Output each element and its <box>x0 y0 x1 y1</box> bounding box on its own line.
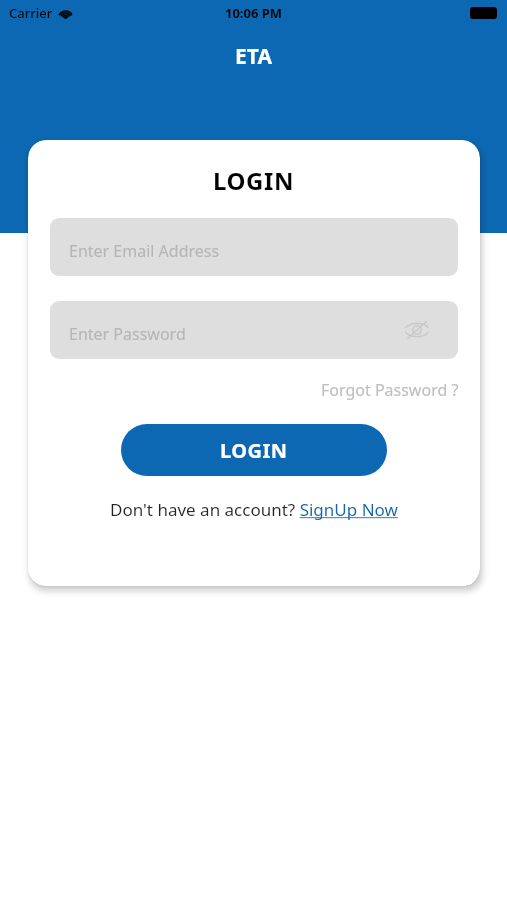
button[interactable]: Don't have an account? SignUp Now <box>110 498 398 521</box>
button[interactable]: LOGIN <box>121 424 387 476</box>
staticText: Enter Email Address <box>69 240 220 262</box>
staticText: 10:06 PM <box>225 4 283 22</box>
staticText: Forgot Password ? <box>321 379 459 401</box>
staticText: ETA <box>235 42 272 71</box>
staticText: LOGIN <box>220 437 288 464</box>
staticText: LOGIN <box>213 164 295 197</box>
staticText: Enter Password <box>69 323 186 345</box>
button[interactable]: Show password <box>402 315 432 345</box>
staticText: Carrier <box>9 4 53 22</box>
staticText: Don't have an account? SignUp Now <box>110 498 398 521</box>
button[interactable]: Enter Email Address <box>50 218 458 276</box>
button[interactable]: Forgot Password ? <box>321 379 459 401</box>
button[interactable]: Enter Password <box>50 301 458 359</box>
